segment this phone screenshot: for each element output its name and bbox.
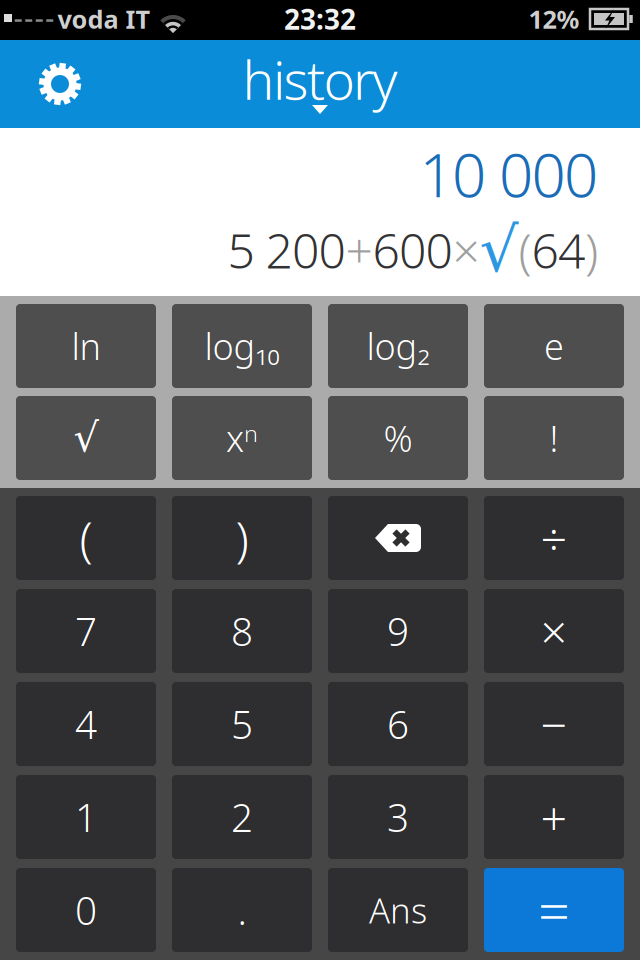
staticText: ÷	[540, 507, 567, 569]
button[interactable]: −	[484, 682, 624, 766]
staticText: 6	[387, 698, 409, 750]
button[interactable]: )	[172, 496, 312, 580]
button[interactable]: (	[16, 496, 156, 580]
button[interactable]: 5	[172, 682, 312, 766]
staticText: log₁₀	[204, 322, 279, 370]
staticText: 4	[75, 698, 97, 750]
button[interactable]: Ans	[328, 868, 468, 952]
staticText: )	[235, 506, 248, 570]
button[interactable]: %	[328, 396, 468, 480]
button[interactable]: √	[16, 396, 156, 480]
staticText: +	[345, 218, 372, 282]
button[interactable]: =	[484, 868, 624, 952]
staticText: !	[549, 414, 558, 462]
button[interactable]: 0	[16, 868, 156, 952]
button[interactable]: Settings	[38, 62, 82, 106]
button[interactable]: ×	[484, 589, 624, 673]
staticText: e	[544, 322, 564, 370]
staticText: .	[237, 884, 246, 936]
button[interactable]: xⁿ	[172, 396, 312, 480]
button[interactable]: 6	[328, 682, 468, 766]
button[interactable]: ln	[16, 304, 156, 388]
button[interactable]: e	[484, 304, 624, 388]
button[interactable]: 9	[328, 589, 468, 673]
staticText: ×	[452, 218, 479, 282]
button[interactable]: Delete	[328, 496, 468, 580]
staticText: ×	[540, 600, 567, 662]
staticText: 0	[75, 884, 97, 936]
button[interactable]: .	[172, 868, 312, 952]
staticText: 12%	[528, 2, 579, 36]
button[interactable]: +	[484, 775, 624, 859]
staticText: 9	[387, 605, 409, 657]
button[interactable]: history	[240, 40, 400, 128]
button[interactable]: ÷	[484, 496, 624, 580]
staticText: 23:32	[284, 0, 356, 38]
staticText: ln	[71, 322, 100, 370]
staticText: 5 200	[227, 218, 345, 282]
button[interactable]: 7	[16, 589, 156, 673]
staticText: +	[540, 786, 567, 848]
button[interactable]: 4	[16, 682, 156, 766]
staticText: history	[242, 44, 397, 114]
staticText: voda IT	[57, 2, 150, 36]
staticText: =	[538, 873, 570, 947]
staticText: %	[383, 414, 412, 462]
button[interactable]: log₂	[328, 304, 468, 388]
staticText: (	[518, 218, 531, 282]
staticText: log₂	[366, 322, 429, 370]
staticText: Ans	[369, 887, 427, 933]
button[interactable]: 3	[328, 775, 468, 859]
staticText: 7	[75, 605, 97, 657]
staticText: (	[79, 506, 92, 570]
staticText: 2	[231, 791, 253, 843]
staticText: )	[585, 218, 598, 282]
staticText: 5	[231, 698, 253, 750]
staticText: 8	[231, 605, 253, 657]
staticText: 1	[75, 791, 97, 843]
staticText: 600	[372, 218, 452, 282]
staticText: −	[540, 693, 567, 755]
staticText: √	[73, 415, 98, 461]
staticText: 3	[387, 791, 409, 843]
staticText: √	[479, 215, 518, 285]
button[interactable]: 2	[172, 775, 312, 859]
button[interactable]: !	[484, 396, 624, 480]
staticText: 64	[531, 218, 585, 282]
staticText: 10 000	[419, 134, 598, 214]
staticText: xⁿ	[226, 414, 258, 462]
button[interactable]: log₁₀	[172, 304, 312, 388]
button[interactable]: 8	[172, 589, 312, 673]
button[interactable]: 1	[16, 775, 156, 859]
